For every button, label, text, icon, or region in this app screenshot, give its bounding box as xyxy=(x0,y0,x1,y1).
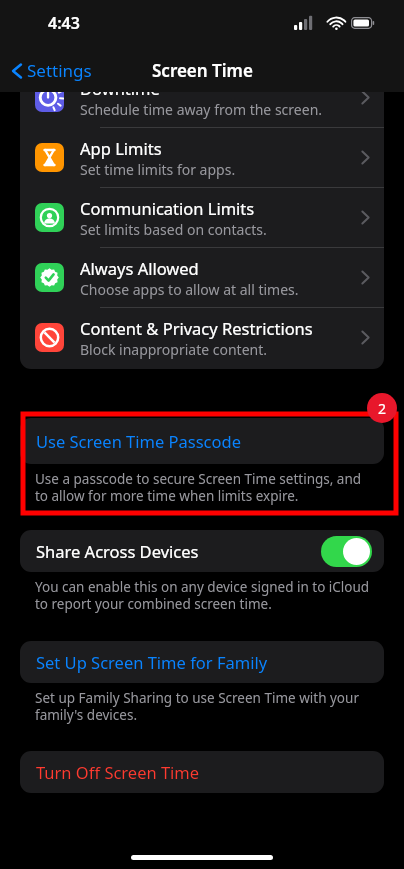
staticText: Content & Privacy Restrictions xyxy=(80,317,313,339)
staticText: Block inappropriate content. xyxy=(80,340,268,359)
staticText: Communication Limits xyxy=(80,197,255,219)
staticText: Set Up Screen Time for Family xyxy=(36,651,268,673)
button[interactable]: Always Allowed xyxy=(20,248,384,307)
staticText: Choose apps to allow at all times. xyxy=(80,280,299,299)
staticText: Always Allowed xyxy=(80,257,199,279)
staticText: Settings xyxy=(27,59,92,82)
button[interactable]: Use Screen Time Passcode xyxy=(20,418,384,464)
button[interactable]: Settings xyxy=(10,59,92,82)
staticText: 4:43 xyxy=(48,12,80,34)
button[interactable]: Set Up Screen Time for Family xyxy=(20,641,384,683)
staticText: Schedule time away from the screen. xyxy=(80,100,323,119)
button[interactable]: Share Across Devices toggle xyxy=(321,536,372,567)
button[interactable]: App Limits xyxy=(20,128,384,187)
button[interactable]: Communication Limits xyxy=(20,188,384,247)
staticText: Turn Off Screen Time xyxy=(36,761,200,783)
staticText: Set time limits for apps. xyxy=(80,160,236,179)
staticText: App Limits xyxy=(80,137,162,159)
staticText: Set limits based on contacts. xyxy=(80,220,267,239)
button[interactable]: Content & Privacy Restrictions xyxy=(20,308,384,367)
button[interactable]: Downtime xyxy=(20,68,384,127)
button[interactable]: Turn Off Screen Time xyxy=(20,751,384,793)
button[interactable]: Share Across Devices xyxy=(20,530,384,572)
staticText: 2 xyxy=(378,399,387,418)
staticText: Use Screen Time Passcode xyxy=(36,430,241,452)
staticText: Screen Time xyxy=(152,59,253,82)
staticText: Downtime xyxy=(80,77,160,99)
staticText: Use a passcode to secure Screen Time set… xyxy=(35,470,385,505)
staticText: Set up Family Sharing to use Screen Time… xyxy=(35,689,385,724)
staticText: You can enable this on any device signed… xyxy=(35,578,385,613)
staticText: Share Across Devices xyxy=(36,540,321,562)
